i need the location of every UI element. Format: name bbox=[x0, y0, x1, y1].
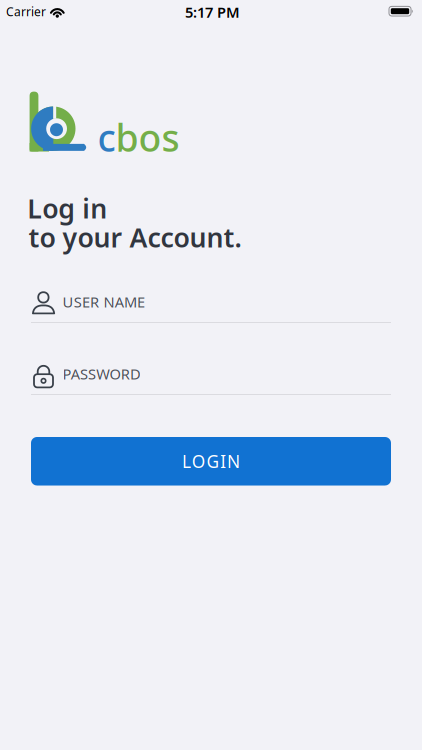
staticText: USER NAME bbox=[62, 292, 145, 312]
button[interactable]: User name bbox=[31, 290, 391, 332]
staticText: Log in bbox=[27, 190, 107, 226]
staticText: to your Account. bbox=[28, 219, 241, 255]
staticText: PASSWORD bbox=[62, 364, 141, 384]
staticText: Carrier bbox=[6, 3, 46, 19]
staticText: 5:17 PM bbox=[185, 2, 240, 22]
staticText: bos bbox=[115, 112, 179, 162]
staticText: c bbox=[97, 112, 115, 162]
button[interactable]: Password bbox=[31, 362, 391, 404]
button[interactable]: LOGIN bbox=[31, 437, 391, 485]
staticText: LOGIN bbox=[182, 450, 240, 473]
